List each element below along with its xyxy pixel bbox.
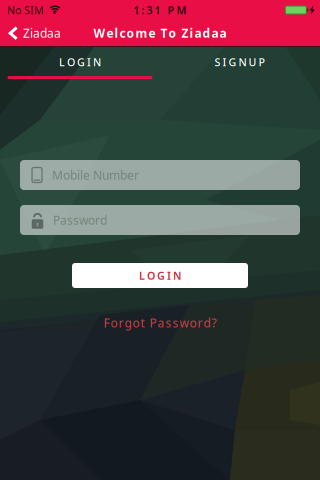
staticText: L O G I N (59, 55, 101, 69)
staticText: W e l c o m e T o Z i a d a a (93, 25, 226, 41)
staticText: Mobile Number (52, 167, 139, 183)
staticText: S I G N U P (214, 55, 265, 69)
button[interactable]: L O G I N (0, 47, 160, 89)
button[interactable]: F o r g o t P a s s w o r d ? (103, 315, 216, 331)
button[interactable]: L O G I N (72, 263, 248, 288)
button[interactable]: Password (20, 205, 300, 235)
staticText: F o r g o t P a s s w o r d ? (103, 315, 216, 331)
button[interactable]: Back (8, 25, 61, 41)
button[interactable]: Mobile Number (20, 160, 300, 190)
button[interactable]: S I G N U P (160, 47, 320, 89)
staticText: No SIM (7, 3, 44, 17)
staticText: Ziadaa (23, 25, 61, 41)
staticText: Password (53, 212, 107, 228)
staticText: L O G I N (139, 268, 181, 283)
staticText: 1 : 3 1 P M (133, 3, 186, 17)
